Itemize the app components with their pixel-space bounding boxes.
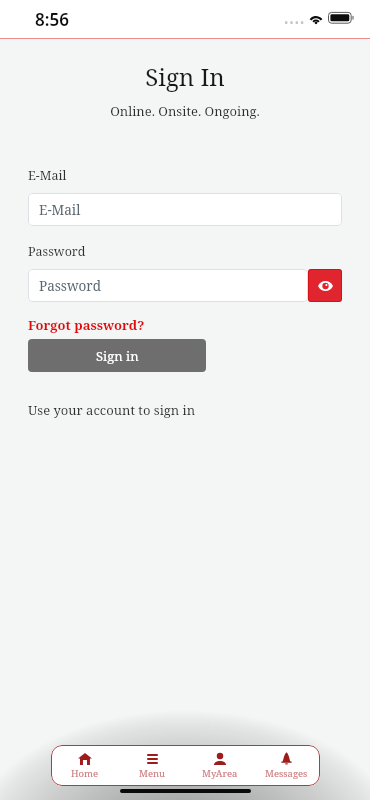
button[interactable]: Home xyxy=(51,745,119,786)
staticText: Messages xyxy=(265,767,308,780)
staticText: Online. Onsite. Ongoing. xyxy=(0,102,370,120)
staticText: Use your account to sign in xyxy=(28,401,196,419)
button[interactable]: Forgot password? xyxy=(28,316,145,334)
button[interactable]: MyArea xyxy=(186,745,253,786)
button[interactable]: Sign in xyxy=(28,339,206,372)
staticText: Menu xyxy=(139,767,166,780)
staticText: Sign In xyxy=(0,60,370,93)
button[interactable]: Password xyxy=(28,269,308,302)
staticText: MyArea xyxy=(202,767,238,780)
button[interactable]: Messages xyxy=(253,745,320,786)
staticText: Forgot password? xyxy=(28,316,145,334)
staticText: Password xyxy=(28,243,86,260)
staticText: 8:56 xyxy=(35,8,69,31)
staticText: Password xyxy=(39,277,102,295)
staticText: E-Mail xyxy=(28,167,67,184)
button[interactable]: Show password xyxy=(308,269,342,302)
button[interactable]: E-Mail xyxy=(28,193,342,226)
staticText: Sign in xyxy=(96,347,139,365)
staticText: E-Mail xyxy=(39,201,81,219)
button[interactable]: Menu xyxy=(119,745,186,786)
staticText: Home xyxy=(71,767,99,780)
